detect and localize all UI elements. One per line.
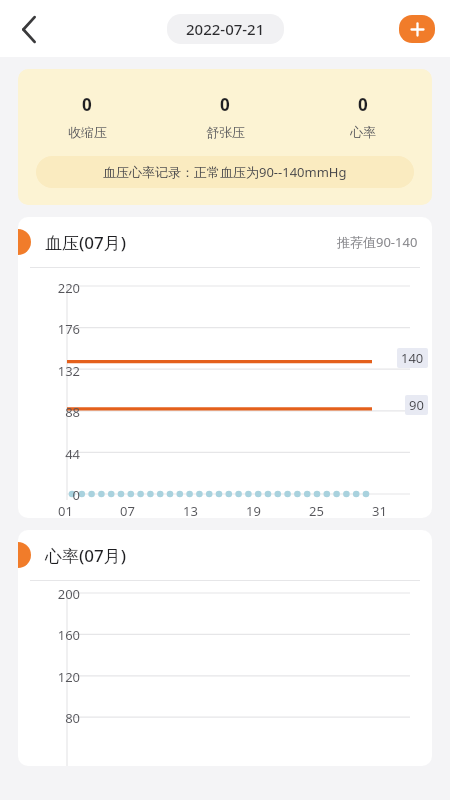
staticText: 200 <box>18 585 80 603</box>
staticText: 120 <box>18 668 80 686</box>
staticText: 心率(07月) <box>45 544 127 567</box>
staticText: 19 <box>246 502 309 518</box>
staticText: 推荐值90-140 <box>337 233 418 251</box>
staticText: 13 <box>183 502 246 518</box>
staticText: 07 <box>120 502 183 518</box>
button[interactable]: 血压(07月) <box>18 217 432 518</box>
staticText: 90 <box>409 396 424 414</box>
staticText: 心率 <box>350 124 376 140</box>
staticText: 血压(07月) <box>45 231 127 254</box>
staticText: 176 <box>18 320 80 338</box>
staticText: 0 <box>220 93 230 116</box>
staticText: 31 <box>372 502 410 518</box>
staticText: 0 <box>18 486 80 504</box>
button[interactable]: 2022-07-21 <box>167 14 284 44</box>
button[interactable]: Add record <box>399 15 435 43</box>
staticText: 血压心率记录：正常血压为90--140mmHg <box>103 163 347 181</box>
button[interactable]: 心率(07月) <box>18 530 432 766</box>
staticText: 220 <box>18 279 80 297</box>
staticText: 88 <box>18 403 80 421</box>
staticText: 舒张压 <box>206 124 245 140</box>
staticText: 收缩压 <box>68 124 107 140</box>
button[interactable]: 0 <box>18 69 432 205</box>
button[interactable]: Back <box>9 9 49 49</box>
staticText: 80 <box>18 709 80 727</box>
staticText: 160 <box>18 626 80 644</box>
staticText: 132 <box>18 362 80 380</box>
staticText: 01 <box>58 502 120 518</box>
staticText: 140 <box>401 349 424 367</box>
staticText: 25 <box>309 502 372 518</box>
staticText: 2022-07-21 <box>186 19 265 39</box>
staticText: 44 <box>18 445 80 463</box>
staticText: 0 <box>82 93 92 116</box>
staticText: 0 <box>358 93 368 116</box>
